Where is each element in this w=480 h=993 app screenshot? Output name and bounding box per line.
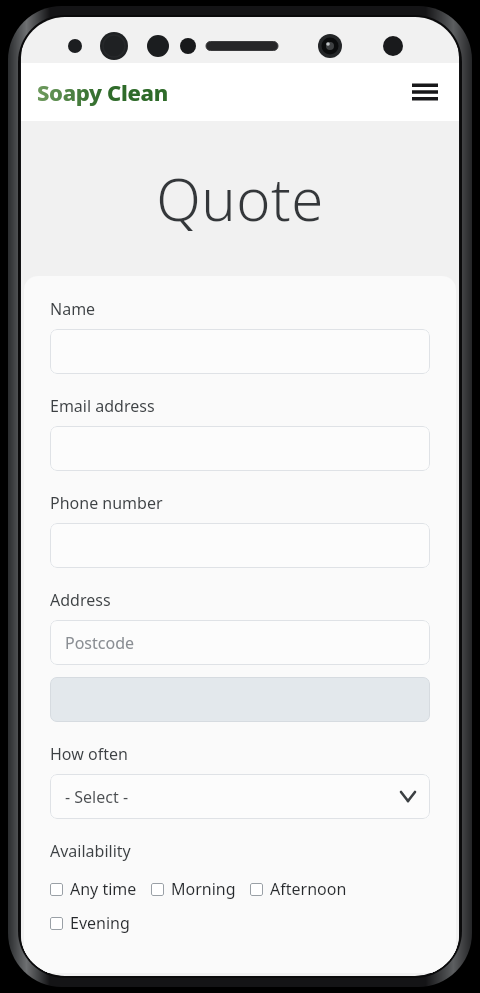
button[interactable]: - Select - [50,774,430,819]
button[interactable]: Soapy Clean [35,73,170,111]
staticText: Address [50,589,111,611]
staticText: Availability [50,840,131,862]
staticText: Quote [156,159,324,238]
staticText: Any time [70,878,137,900]
staticText: Postcode [65,632,135,654]
button[interactable]: Postcode [50,620,430,665]
button[interactable]: Morning [151,875,236,903]
button[interactable] [50,523,430,568]
staticText: Phone number [50,492,163,514]
staticText: Evening [70,912,130,934]
staticText: Email address [50,395,155,417]
staticText: Soapy Clean [37,77,168,107]
button[interactable] [50,426,430,471]
staticText: How often [50,743,128,765]
button[interactable]: Open menu [405,72,445,112]
button[interactable] [50,329,430,374]
staticText: - Select - [65,786,129,808]
button[interactable]: Any time [50,875,137,903]
button[interactable]: Afternoon [250,875,347,903]
staticText: Name [50,298,96,320]
staticText: Morning [171,878,236,900]
staticText: Afternoon [270,878,347,900]
button[interactable]: Evening [50,909,130,937]
